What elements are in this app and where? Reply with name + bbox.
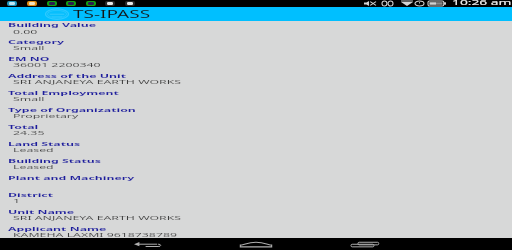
staticText: 24.35 xyxy=(13,129,45,136)
staticText: Applicant Name xyxy=(8,225,107,232)
staticText: Building Status xyxy=(8,157,101,164)
staticText: SRI ANJANEYA EARTH WORKS xyxy=(13,214,182,221)
staticText: Small xyxy=(13,44,45,51)
staticText: Unit Name xyxy=(8,208,75,215)
staticText: Address of the Unit xyxy=(8,72,127,79)
staticText: Land Status xyxy=(8,140,81,147)
button[interactable]: Recent apps xyxy=(328,238,402,250)
staticText: Plant and Machinery xyxy=(8,174,135,181)
staticText: District xyxy=(8,191,54,198)
staticText: 1 xyxy=(13,197,21,204)
staticText: 10:26 am xyxy=(452,0,512,1)
staticText: Leased xyxy=(13,146,54,153)
staticText: Type of Organization xyxy=(8,106,136,113)
staticText: Leased xyxy=(13,163,54,170)
staticText: Category xyxy=(8,38,64,45)
staticText: TS-IPASS xyxy=(73,6,151,14)
staticText: 36001 2200340 xyxy=(13,61,101,68)
staticText: EM NO xyxy=(8,55,50,62)
staticText: Total Employment xyxy=(8,89,119,96)
staticText: SRI ANJANEYA EARTH WORKS xyxy=(13,78,182,85)
staticText: Total xyxy=(8,123,39,130)
staticText: 0.00 xyxy=(13,28,38,35)
staticText: Proprietary xyxy=(13,112,79,119)
button[interactable]: Back xyxy=(110,238,184,250)
staticText: Small xyxy=(13,95,45,102)
staticText: KAMEHA LAXMI 9618738789 xyxy=(13,231,177,238)
staticText: Building Value xyxy=(8,21,97,28)
button[interactable]: Home xyxy=(219,238,293,250)
